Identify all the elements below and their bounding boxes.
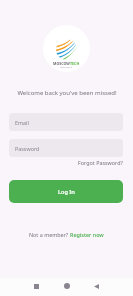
button[interactable]: Password xyxy=(9,139,123,157)
button[interactable]: Log In xyxy=(9,180,123,203)
staticText: Log In xyxy=(58,188,75,196)
staticText: Not a member? xyxy=(29,231,70,238)
staticText: Email xyxy=(15,119,29,126)
button[interactable]: Back xyxy=(82,278,111,294)
button[interactable]: Register now xyxy=(70,231,104,238)
button[interactable]: Home xyxy=(52,278,81,294)
button[interactable]: Forgot Password? xyxy=(78,158,123,167)
staticText: MOSCOW xyxy=(53,61,70,66)
staticText: SOLUTIONS xyxy=(60,66,73,69)
staticText: Welcome back you've been missed! xyxy=(17,89,117,97)
button[interactable]: Recent apps xyxy=(22,278,51,294)
staticText: TECH xyxy=(70,61,80,66)
staticText: Password xyxy=(15,145,40,152)
button[interactable]: Email xyxy=(9,113,123,131)
staticText: Register now xyxy=(70,231,104,238)
staticText: Forgot Password? xyxy=(78,159,123,166)
